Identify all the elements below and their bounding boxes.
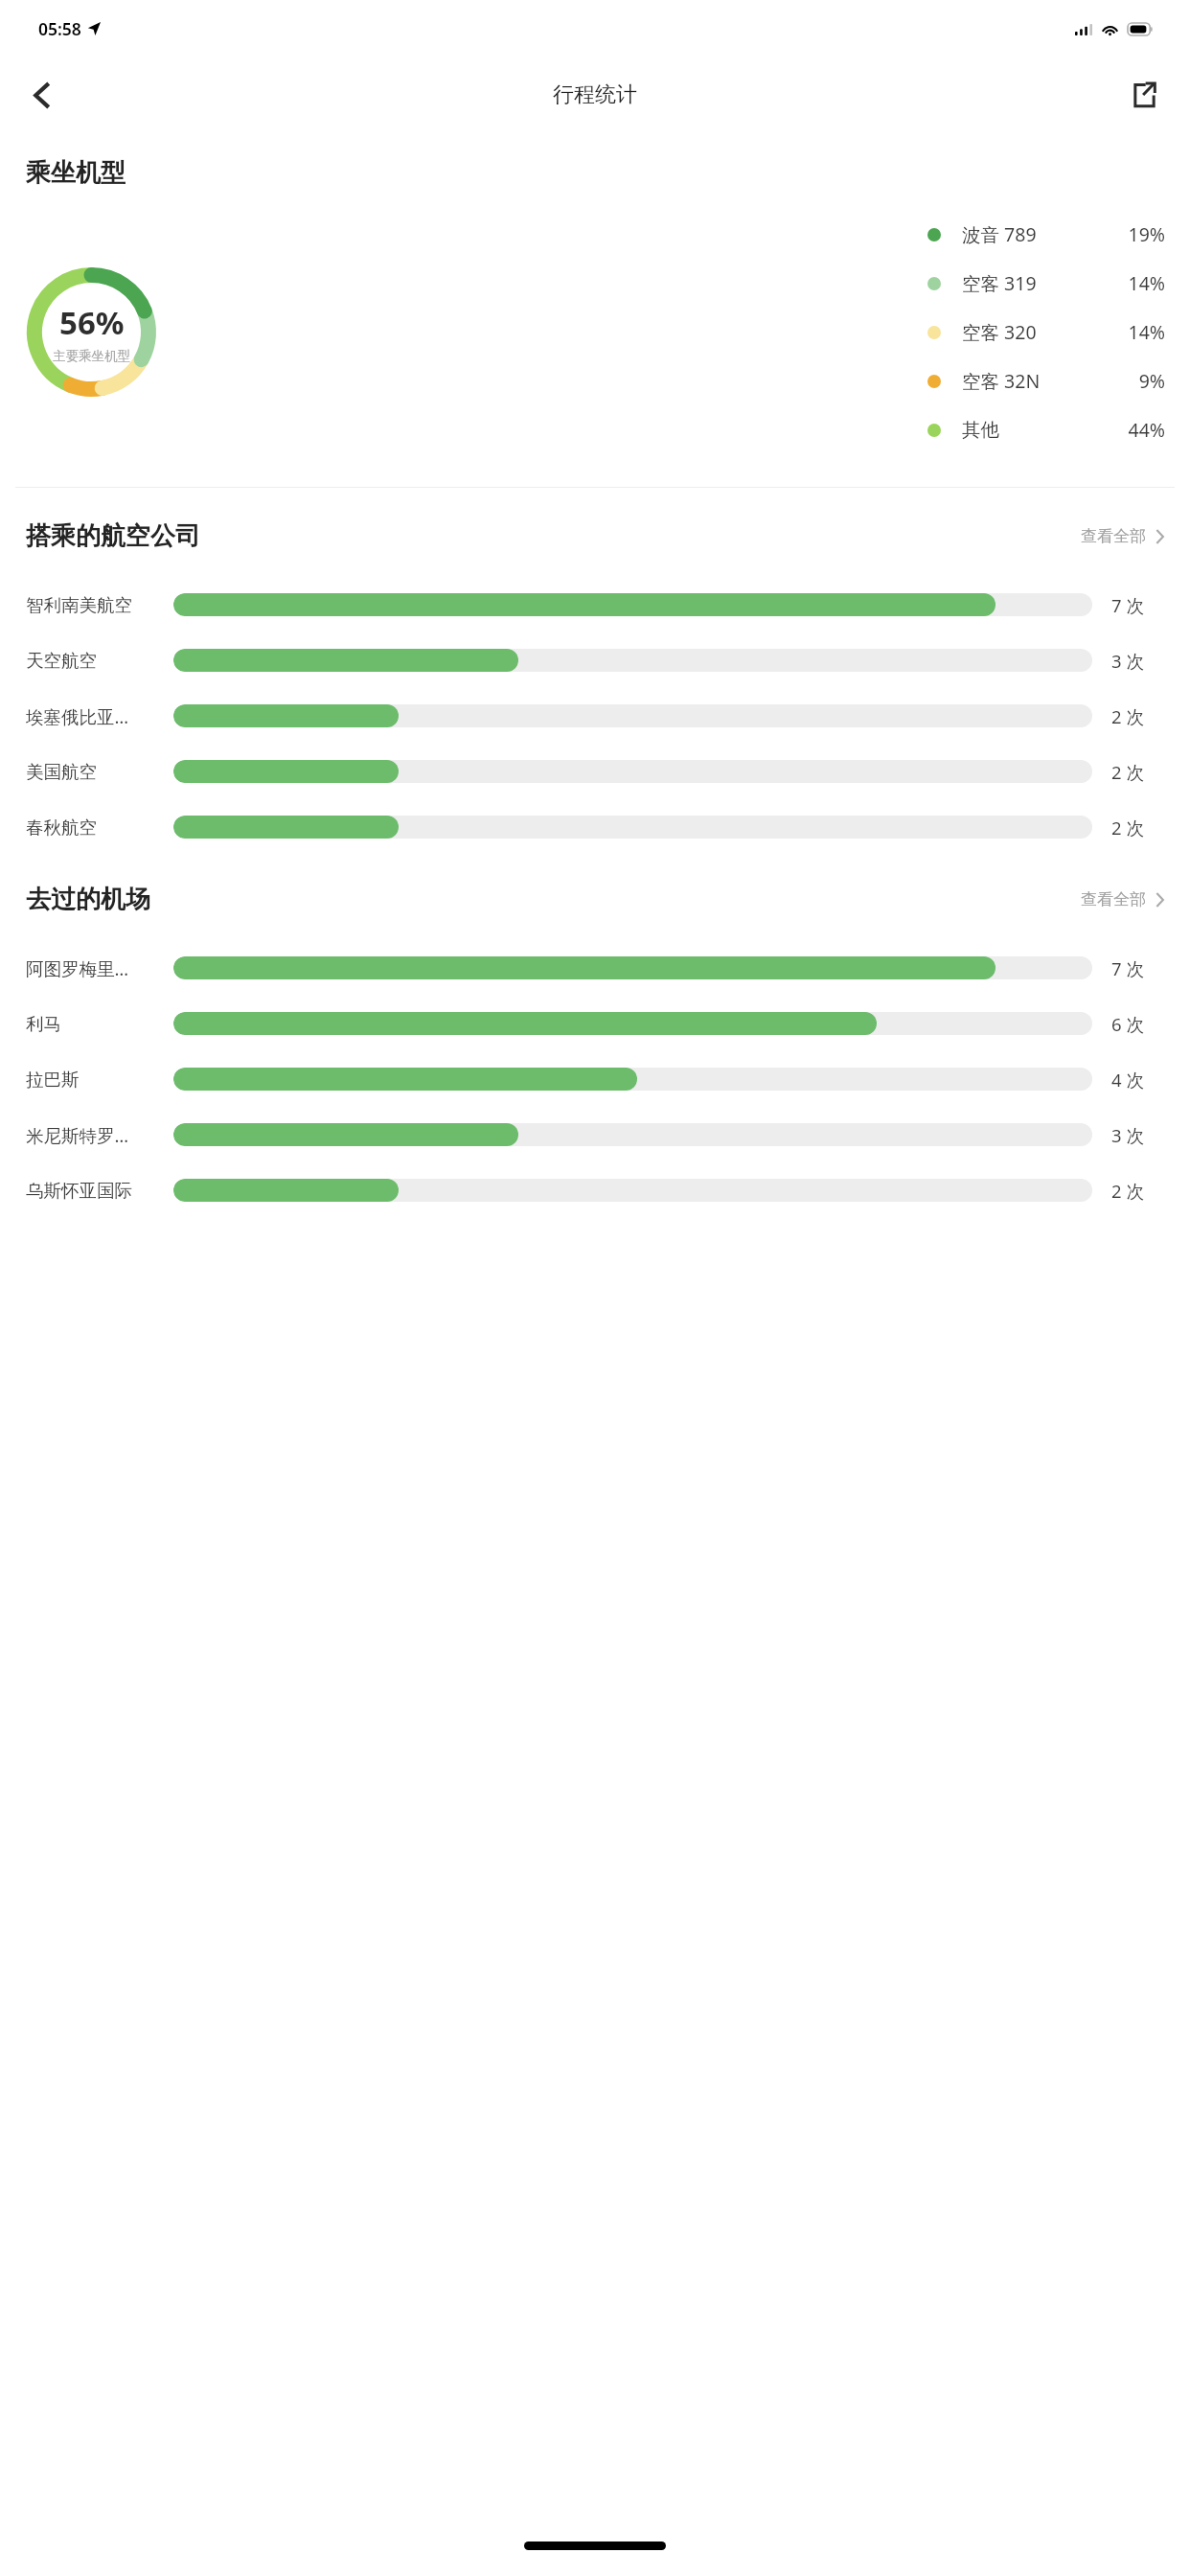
staticText: 2 次 [1111, 704, 1144, 728]
staticText: 56% [59, 301, 125, 344]
button[interactable]: 查看全部 [1071, 520, 1164, 552]
staticText: 空客 319 [962, 270, 1037, 296]
button[interactable]: Back [15, 68, 69, 122]
staticText: 44% [1128, 417, 1165, 443]
staticText: 拉巴斯 [26, 1069, 80, 1091]
staticText: 波音 789 [962, 221, 1037, 247]
button[interactable]: Share [1117, 68, 1171, 122]
staticText: 7 次 [1111, 956, 1144, 980]
staticText: 米尼斯特罗… [26, 1123, 129, 1147]
staticText: 天空航空 [26, 650, 97, 672]
staticText: 行程统计 [553, 81, 637, 108]
staticText: 3 次 [1111, 1123, 1144, 1147]
staticText: 14% [1128, 270, 1165, 296]
staticText: 乘坐机型 [26, 157, 126, 189]
button[interactable]: 埃塞俄比亚… [0, 688, 1190, 744]
staticText: 2 次 [1111, 760, 1144, 784]
staticText: 6 次 [1111, 1012, 1144, 1036]
staticText: 春秋航空 [26, 816, 97, 839]
staticText: 阿图罗梅里… [26, 956, 129, 980]
staticText: 去过的机场 [26, 884, 150, 915]
button[interactable]: 米尼斯特罗… [0, 1107, 1190, 1162]
button[interactable]: 天空航空 [0, 632, 1190, 688]
staticText: 2 次 [1111, 1179, 1144, 1203]
staticText: 主要乘坐机型 [53, 348, 130, 364]
button[interactable]: 乌斯怀亚国际 [0, 1162, 1190, 1218]
staticText: 利马 [26, 1013, 61, 1035]
staticText: 查看全部 [1081, 889, 1146, 909]
staticText: 美国航空 [26, 761, 97, 783]
button[interactable]: 其他 [927, 405, 1165, 454]
button[interactable]: 美国航空 [0, 744, 1190, 799]
button[interactable]: 利马 [0, 996, 1190, 1051]
button[interactable]: 查看全部 [1071, 884, 1164, 915]
staticText: 乌斯怀亚国际 [26, 1180, 132, 1202]
button[interactable]: 空客 32N [927, 356, 1165, 405]
staticText: 3 次 [1111, 649, 1144, 673]
staticText: 14% [1128, 319, 1165, 345]
button[interactable]: 春秋航空 [0, 799, 1190, 855]
staticText: 7 次 [1111, 593, 1144, 617]
staticText: 埃塞俄比亚… [26, 704, 129, 728]
staticText: 空客 32N [962, 368, 1041, 394]
staticText: 查看全部 [1081, 526, 1146, 546]
button[interactable]: 拉巴斯 [0, 1051, 1190, 1107]
button[interactable]: 空客 320 [927, 308, 1165, 356]
button[interactable]: 阿图罗梅里… [0, 940, 1190, 996]
staticText: 19% [1128, 221, 1165, 247]
button[interactable]: 智利南美航空 [0, 577, 1190, 632]
staticText: 智利南美航空 [26, 594, 132, 616]
staticText: 05:58 [38, 17, 81, 40]
staticText: 2 次 [1111, 816, 1144, 839]
staticText: 搭乘的航空公司 [26, 520, 200, 552]
button[interactable]: 波音 789 [927, 210, 1165, 259]
button[interactable]: 空客 319 [927, 259, 1165, 308]
staticText: 9% [1138, 368, 1165, 394]
staticText: 其他 [962, 418, 999, 442]
staticText: 4 次 [1111, 1068, 1144, 1092]
staticText: 空客 320 [962, 319, 1037, 345]
